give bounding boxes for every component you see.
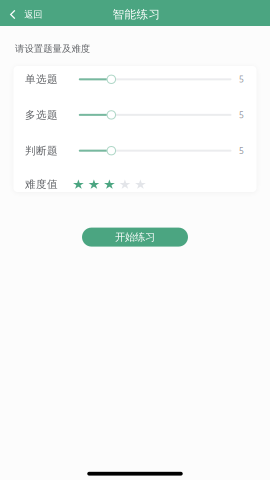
button[interactable]: Difficulty 5 stars (135, 180, 145, 189)
button[interactable]: Difficulty 1 star (73, 180, 83, 189)
staticText: 5 (239, 145, 244, 156)
button[interactable]: 多选题 (0, 97, 270, 133)
button[interactable]: 单选题 (0, 61, 270, 97)
staticText: 智能练习 (112, 7, 160, 22)
button[interactable]: 判断题 (0, 133, 270, 169)
button[interactable]: 返回 (0, 0, 58, 26)
staticText: 多选题 (25, 108, 58, 122)
button[interactable]: Difficulty 2 stars (89, 180, 99, 189)
button[interactable]: Difficulty 3 stars (104, 180, 114, 189)
staticText: 请设置题量及难度 (15, 43, 90, 55)
staticText: 5 (239, 109, 244, 121)
staticText: 返回 (24, 9, 42, 20)
staticText: 开始练习 (115, 231, 155, 243)
staticText: 单选题 (25, 73, 58, 86)
button[interactable]: Difficulty 4 stars (120, 180, 130, 189)
button[interactable]: 开始练习 (82, 228, 188, 247)
staticText: 难度值 (25, 178, 58, 191)
staticText: 5 (239, 74, 244, 85)
staticText: 判断题 (25, 144, 58, 157)
